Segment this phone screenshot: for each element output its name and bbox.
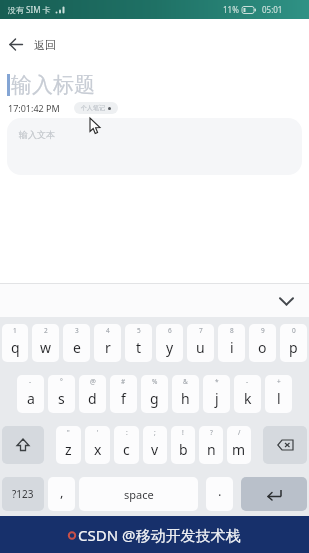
button[interactable] bbox=[2, 426, 44, 464]
button[interactable]: space bbox=[79, 477, 198, 511]
staticText: 1 bbox=[13, 326, 17, 335]
staticText: q bbox=[11, 338, 20, 357]
button[interactable]: ?123 bbox=[2, 477, 44, 511]
staticText: 8 bbox=[230, 326, 234, 335]
staticText: b bbox=[179, 440, 188, 459]
button[interactable]: ' bbox=[85, 426, 110, 464]
staticText: l bbox=[277, 389, 281, 408]
button[interactable]: 4 bbox=[94, 324, 121, 362]
staticText: - bbox=[29, 377, 32, 386]
button[interactable]: - bbox=[234, 375, 261, 413]
staticText: f bbox=[121, 389, 126, 408]
staticText: . bbox=[218, 482, 222, 500]
button[interactable] bbox=[263, 426, 307, 464]
button[interactable]: @ bbox=[79, 375, 106, 413]
staticText: 6 bbox=[168, 326, 172, 335]
staticText: ' bbox=[97, 428, 99, 437]
button[interactable]: ° bbox=[48, 375, 75, 413]
button[interactable]: : bbox=[114, 426, 139, 464]
staticText: 05:01 bbox=[262, 4, 283, 15]
button[interactable]: * bbox=[203, 375, 230, 413]
staticText: p bbox=[289, 338, 298, 357]
staticText: t bbox=[136, 338, 142, 357]
button[interactable]: 返回 bbox=[0, 19, 309, 61]
staticText: space bbox=[124, 487, 154, 502]
staticText: 个人笔记 bbox=[81, 104, 105, 112]
staticText: " bbox=[67, 428, 70, 437]
staticText: , bbox=[60, 483, 64, 501]
button[interactable]: 6 bbox=[156, 324, 183, 362]
staticText: 0 bbox=[292, 326, 296, 335]
staticText: ?123 bbox=[12, 487, 34, 501]
staticText: r bbox=[105, 338, 111, 357]
button[interactable]: ? bbox=[199, 426, 223, 464]
button[interactable]: 1 bbox=[2, 324, 28, 362]
staticText: 5 bbox=[137, 326, 141, 335]
staticText: c bbox=[123, 440, 130, 459]
staticText: z bbox=[65, 440, 72, 459]
staticText: ° bbox=[60, 377, 63, 386]
staticText: e bbox=[73, 338, 81, 357]
button[interactable]: . bbox=[206, 477, 233, 511]
staticText: # bbox=[121, 377, 126, 386]
staticText: o bbox=[258, 338, 267, 357]
staticText: a bbox=[27, 389, 35, 408]
button[interactable]: 2 bbox=[32, 324, 59, 362]
button[interactable]: + bbox=[265, 375, 292, 413]
staticText: m bbox=[232, 440, 246, 459]
staticText: 3 bbox=[75, 326, 79, 335]
button[interactable]: % bbox=[141, 375, 168, 413]
staticText: 输入标题 bbox=[11, 72, 95, 98]
staticText: / bbox=[238, 428, 241, 437]
button[interactable]: , bbox=[48, 477, 75, 511]
staticText: ? bbox=[210, 428, 213, 437]
staticText: 没有 SIM 卡 bbox=[8, 4, 51, 15]
staticText: h bbox=[181, 389, 190, 408]
staticText: i bbox=[230, 338, 234, 357]
button[interactable]: # bbox=[110, 375, 137, 413]
staticText: : bbox=[126, 428, 128, 437]
button[interactable]: ! bbox=[171, 426, 195, 464]
button[interactable]: 5 bbox=[125, 324, 152, 362]
staticText: 9 bbox=[261, 326, 265, 335]
staticText: ! bbox=[182, 428, 184, 437]
staticText: 返回 bbox=[34, 38, 56, 52]
button[interactable] bbox=[241, 477, 307, 511]
button[interactable]: 7 bbox=[187, 324, 214, 362]
button[interactable]: 8 bbox=[218, 324, 245, 362]
staticText: * bbox=[215, 377, 219, 386]
button[interactable]: ; bbox=[143, 426, 167, 464]
button[interactable]: 3 bbox=[63, 324, 90, 362]
button[interactable]: " bbox=[56, 426, 81, 464]
staticText: 输入文本 bbox=[19, 129, 55, 140]
button[interactable]: - bbox=[17, 375, 44, 413]
staticText: - bbox=[246, 377, 249, 386]
staticText: w bbox=[40, 338, 52, 357]
staticText: CSDN @移动开发技术栈 bbox=[78, 525, 241, 545]
staticText: + bbox=[277, 377, 281, 386]
staticText: 17:01:42 PM bbox=[8, 102, 60, 114]
staticText: 2 bbox=[44, 326, 48, 335]
staticText: x bbox=[94, 440, 102, 459]
button[interactable] bbox=[274, 289, 298, 313]
staticText: g bbox=[150, 389, 159, 408]
staticText: n bbox=[207, 440, 216, 459]
button[interactable]: 输入文本 bbox=[7, 118, 302, 175]
staticText: j bbox=[215, 389, 219, 408]
button[interactable]: 个人笔记 bbox=[74, 102, 118, 114]
staticText: s bbox=[58, 389, 65, 408]
staticText: 11% bbox=[223, 4, 239, 15]
staticText: d bbox=[88, 389, 97, 408]
staticText: ; bbox=[154, 428, 156, 437]
staticText: & bbox=[183, 377, 188, 386]
button[interactable]: 0 bbox=[280, 324, 307, 362]
staticText: u bbox=[196, 338, 205, 357]
staticText: k bbox=[244, 389, 252, 408]
button[interactable]: 9 bbox=[249, 324, 276, 362]
staticText: 7 bbox=[199, 326, 203, 335]
staticText: % bbox=[152, 377, 158, 386]
staticText: y bbox=[166, 338, 174, 357]
staticText: 4 bbox=[106, 326, 110, 335]
button[interactable]: & bbox=[172, 375, 199, 413]
button[interactable]: / bbox=[227, 426, 251, 464]
